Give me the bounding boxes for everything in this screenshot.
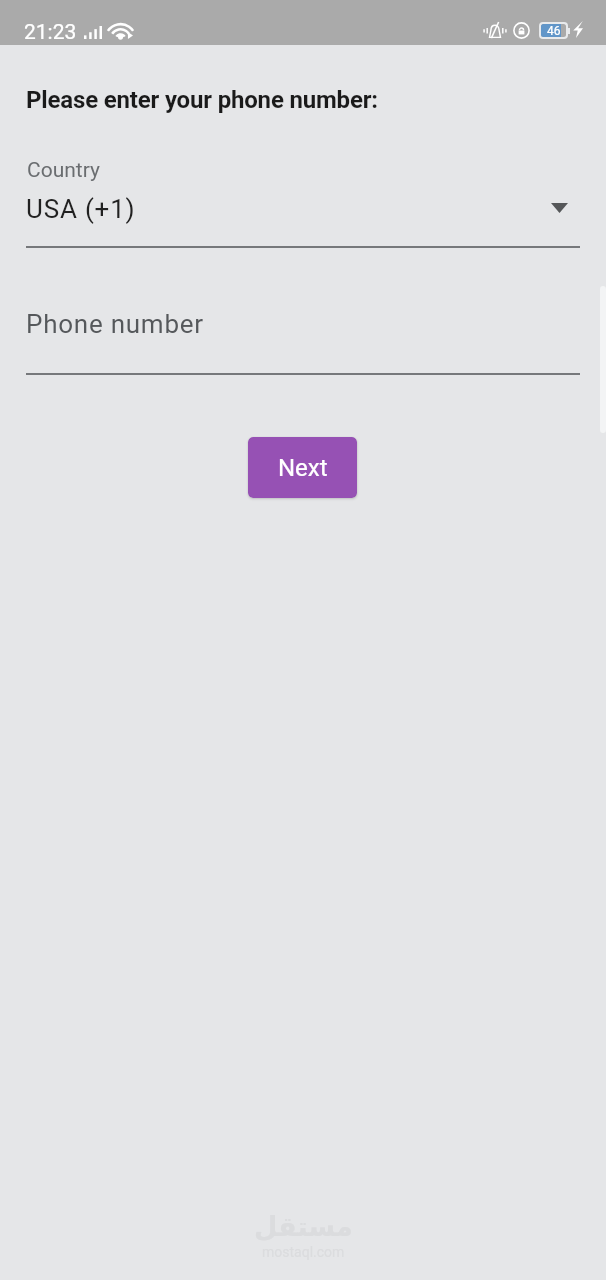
- staticText: Country: [27, 158, 100, 183]
- staticText: USA (+1): [26, 194, 136, 224]
- staticText: Next: [278, 454, 328, 482]
- button[interactable]: Next: [248, 437, 357, 498]
- button[interactable]: Country, USA (+1), select country: [26, 150, 580, 248]
- staticText: 21:23: [24, 20, 77, 45]
- staticText: mostaql.com: [262, 1244, 345, 1260]
- button[interactable]: Phone number input: [26, 290, 580, 375]
- other: Charging: [573, 21, 583, 38]
- staticText: مستقل: [254, 1211, 353, 1242]
- staticText: 46: [547, 24, 561, 38]
- other: Battery 46 percent: [539, 22, 570, 39]
- other: Vibrate mode: [482, 21, 508, 40]
- staticText: Please enter your phone number:: [26, 86, 378, 114]
- other: Screen lock: [513, 22, 530, 39]
- staticText: Phone number: [26, 309, 204, 339]
